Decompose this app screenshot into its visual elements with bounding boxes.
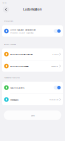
button[interactable]: Brushing duration [2, 48, 63, 60]
staticText: Prevents water splashing [10, 32, 33, 34]
button[interactable]: Save [4, 110, 61, 120]
staticText: Sound alerts [10, 86, 24, 89]
staticText: Additional features [4, 76, 20, 79]
staticText: Anti-splash protection [10, 28, 36, 31]
button[interactable]: Sound alerts [2, 82, 63, 93]
button[interactable]: Anti-splash protection [2, 25, 63, 37]
staticText: Regular [51, 65, 58, 67]
staticText: Brushing duration [10, 52, 33, 56]
button[interactable]: Feedback [2, 94, 63, 105]
staticText: Protection [4, 20, 13, 22]
staticText: Vibration [49, 98, 58, 101]
button[interactable]: Back [2, 5, 10, 13]
staticText: 2 min [52, 53, 58, 56]
staticText: Customization [23, 8, 42, 11]
button[interactable]: Brushing mode [2, 60, 63, 72]
staticText: 9:41 [2, 1, 6, 4]
staticText: Feedback [10, 98, 18, 101]
staticText: Save [30, 114, 34, 117]
staticText: Brushing mode [10, 64, 28, 68]
staticText: Brush routine [4, 43, 16, 45]
